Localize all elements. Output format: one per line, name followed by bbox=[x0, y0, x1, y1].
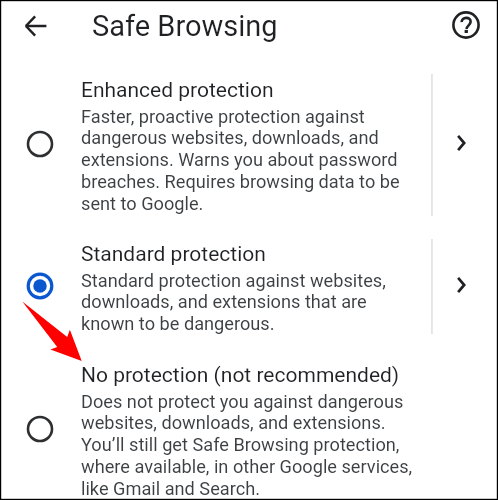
button[interactable]: Standard protection bbox=[26, 272, 54, 300]
staticText: Does not protect you against dangerous w… bbox=[81, 391, 415, 500]
staticText: Enhanced protection bbox=[81, 78, 274, 103]
button[interactable]: Standard protection bbox=[81, 242, 403, 332]
button[interactable]: No protection (not recommended) bbox=[81, 363, 415, 497]
staticText: Standard protection against websites, do… bbox=[81, 270, 403, 335]
staticText: Standard protection bbox=[81, 242, 266, 267]
button[interactable]: No protection (not recommended) bbox=[26, 415, 54, 443]
button[interactable]: Open Enhanced protection settings bbox=[441, 123, 481, 163]
staticText: Safe Browsing bbox=[92, 9, 278, 43]
staticText: Faster, proactive protection against dan… bbox=[81, 106, 403, 215]
button[interactable]: Open Standard protection settings bbox=[441, 265, 481, 305]
button[interactable]: Enhanced protection bbox=[26, 130, 54, 158]
button[interactable]: Help bbox=[448, 7, 484, 43]
button[interactable]: Back bbox=[18, 8, 54, 44]
staticText: No protection (not recommended) bbox=[81, 363, 400, 388]
button[interactable]: Enhanced protection bbox=[81, 78, 403, 212]
